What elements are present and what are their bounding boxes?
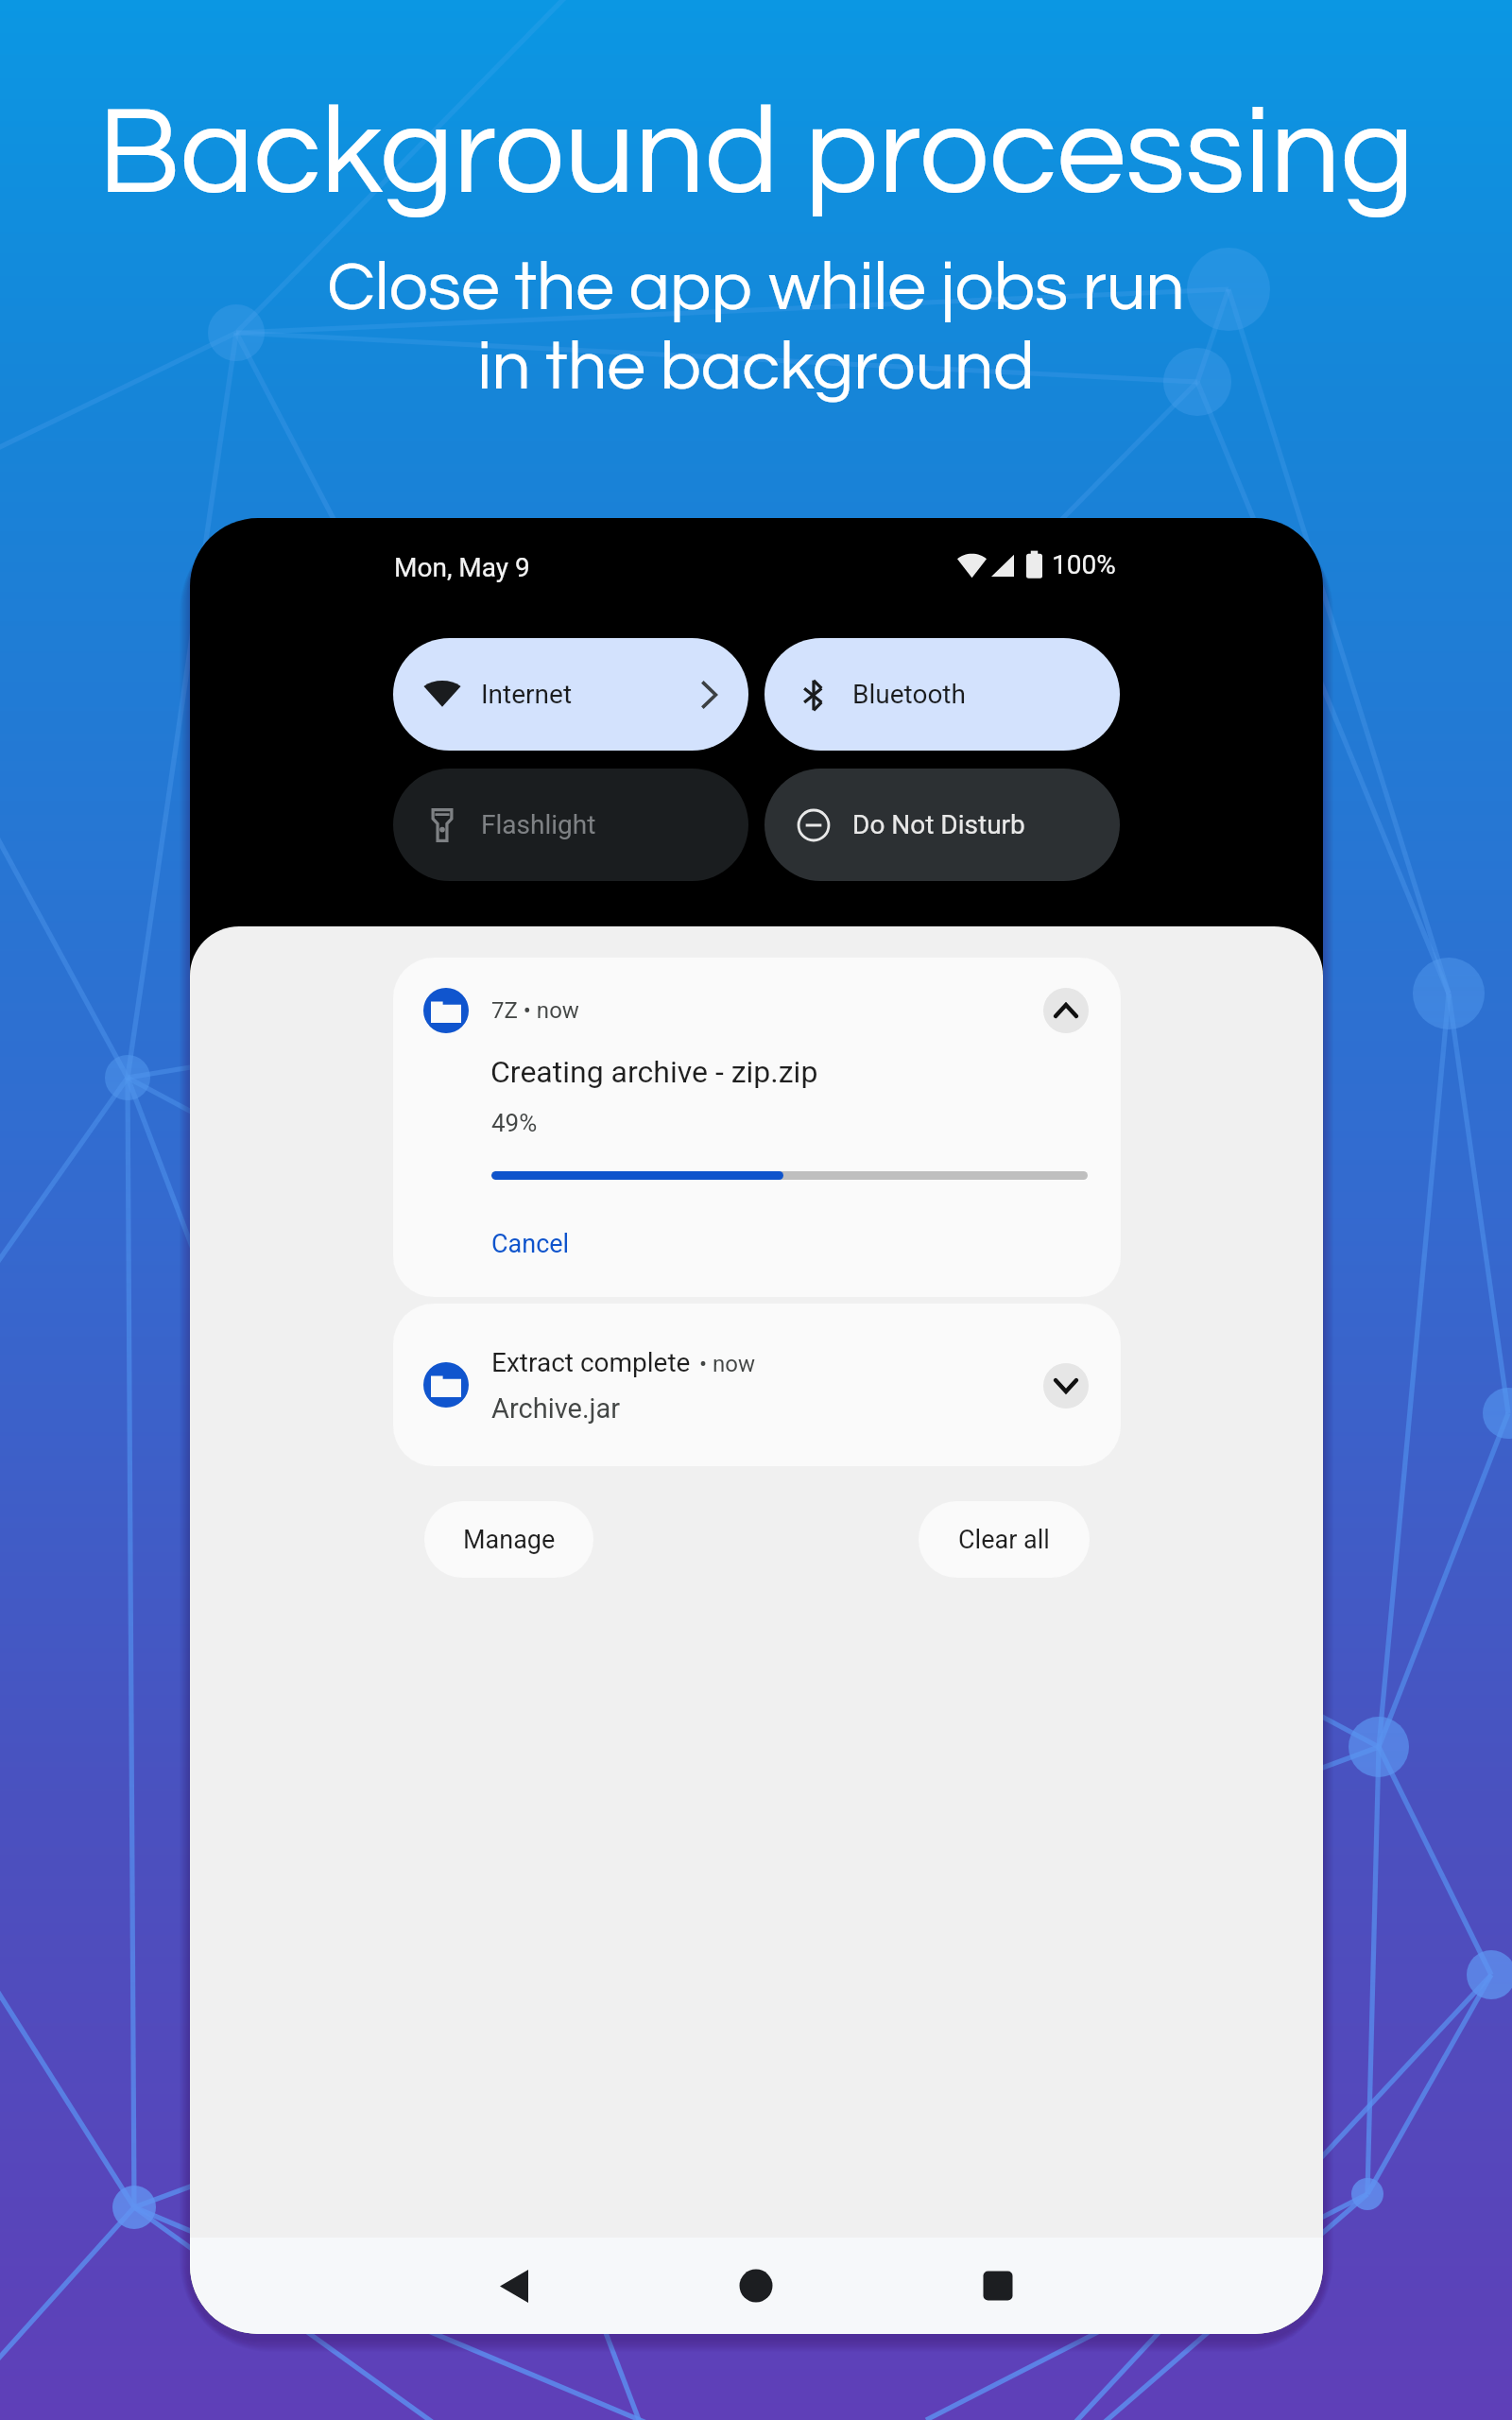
staticText: Archive.jar [491,1392,621,1425]
staticText: Cancel [491,1229,570,1259]
staticText: Internet [481,679,573,710]
staticText: Manage [463,1525,556,1555]
button[interactable]: Home [635,2238,877,2334]
button[interactable]: Clear all [919,1501,1090,1578]
button[interactable]: Collapse [1043,988,1089,1033]
button[interactable]: Extract complete [393,1304,1121,1466]
button[interactable]: Bluetooth [765,638,1120,751]
staticText: 7Z • now [491,997,579,1024]
staticText: Do Not Disturb [852,809,1025,840]
staticText: • now [699,1351,756,1377]
staticText: Background processing [0,91,1512,218]
button[interactable]: Flashlight [393,769,748,881]
staticText: Flashlight [481,809,596,840]
button[interactable]: 7Z • now [393,958,1121,1297]
button[interactable]: Internet [393,638,748,751]
staticText: 49% [491,1109,538,1137]
button[interactable]: Expand [1043,1363,1089,1409]
staticText: 100% [1052,549,1116,580]
staticText: Clear all [958,1525,1050,1555]
staticText: Extract complete [491,1347,691,1378]
staticText: Close the app while jobs run in the back… [0,252,1512,403]
staticText: Mon, May 9 [394,552,530,583]
staticText: Bluetooth [852,679,966,710]
button[interactable]: Cancel [478,1218,583,1270]
button[interactable]: Do Not Disturb [765,769,1120,881]
button[interactable]: Recent apps [877,2238,1119,2334]
button[interactable]: Manage [424,1501,593,1578]
staticText: Creating archive - zip.zip [490,1054,818,1090]
button[interactable]: Back [393,2238,635,2334]
